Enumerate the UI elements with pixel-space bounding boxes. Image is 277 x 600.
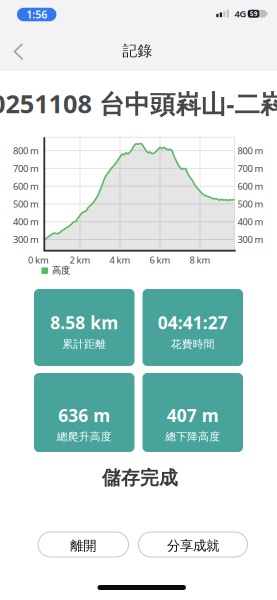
staticText: 花費時間 bbox=[171, 338, 215, 351]
staticText: 500 m bbox=[13, 198, 39, 210]
staticText: 300 m bbox=[237, 233, 263, 246]
staticText: 800 m bbox=[13, 144, 39, 157]
staticText: 總爬升高度 bbox=[57, 430, 112, 443]
staticText: 700 m bbox=[237, 162, 263, 175]
staticText: 2 km bbox=[69, 254, 90, 266]
staticText: 0 km bbox=[28, 254, 49, 266]
button[interactable]: 離開 bbox=[38, 532, 128, 557]
staticText: 600 m bbox=[13, 180, 39, 192]
staticText: 總下降高度 bbox=[165, 430, 220, 443]
staticText: 離開 bbox=[70, 537, 96, 554]
staticText: 8 km bbox=[189, 254, 210, 266]
staticText: 8.58 km bbox=[50, 311, 118, 334]
staticText: 分享成就 bbox=[167, 537, 219, 554]
button[interactable]: Back bbox=[11, 42, 25, 62]
staticText: 636 m bbox=[58, 404, 110, 427]
staticText: 700 m bbox=[13, 162, 39, 175]
staticText: 500 m bbox=[237, 198, 263, 210]
staticText: 407 m bbox=[167, 404, 219, 427]
staticText: 6 km bbox=[149, 254, 170, 266]
staticText: 4G bbox=[234, 7, 246, 20]
staticText: 600 m bbox=[237, 180, 263, 192]
staticText: 59 bbox=[250, 9, 258, 18]
staticText: 4 km bbox=[109, 254, 130, 266]
staticText: 儲存完成 bbox=[102, 466, 178, 489]
staticText: 記錄 bbox=[122, 42, 152, 60]
staticText: 累計距離 bbox=[62, 338, 106, 351]
staticText: 20251108 台中頭嵙山-二嵙山 bbox=[0, 87, 277, 120]
staticText: 300 m bbox=[13, 233, 39, 246]
staticText: 高度 bbox=[52, 265, 70, 276]
staticText: 400 m bbox=[13, 215, 39, 228]
staticText: 800 m bbox=[237, 144, 263, 157]
staticText: 1:56 bbox=[26, 7, 47, 21]
staticText: 400 m bbox=[237, 215, 263, 228]
staticText: 04:41:27 bbox=[158, 311, 228, 334]
button[interactable]: 分享成就 bbox=[138, 532, 247, 557]
